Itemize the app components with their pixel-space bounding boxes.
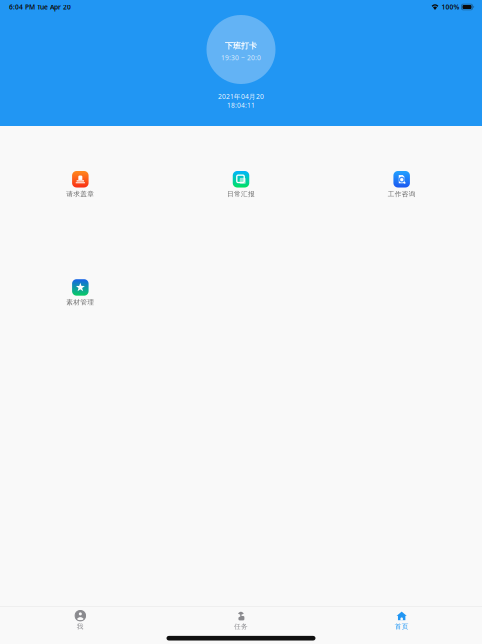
staticText: 100%	[441, 3, 459, 11]
staticText: 素材管理	[66, 298, 94, 306]
button[interactable]: 日常汇报	[161, 171, 321, 198]
staticText: 我	[77, 622, 84, 631]
button[interactable]: 请求盖章	[0, 171, 161, 198]
staticText: 工作咨询	[388, 190, 416, 198]
button[interactable]: 首页	[321, 607, 482, 634]
staticText: 任务	[234, 622, 248, 631]
staticText: 下班打卡	[225, 41, 257, 51]
button[interactable]: 工作咨询	[321, 171, 482, 198]
button[interactable]: 任务	[161, 607, 321, 634]
staticText: 6:04 PM	[9, 3, 35, 11]
staticText: 2021年04月20	[218, 92, 264, 101]
button[interactable]: 素材管理	[0, 279, 161, 306]
staticText: 18:04:11	[227, 101, 255, 110]
staticText: Tue Apr 20	[37, 3, 71, 11]
staticText: 请求盖章	[66, 190, 94, 198]
staticText: 19:30 ~ 20:0	[221, 53, 261, 62]
button[interactable]: 我	[0, 607, 161, 634]
button[interactable]: 下班打卡	[206, 15, 275, 84]
staticText: 首页	[395, 622, 409, 631]
staticText: 日常汇报	[227, 190, 255, 198]
